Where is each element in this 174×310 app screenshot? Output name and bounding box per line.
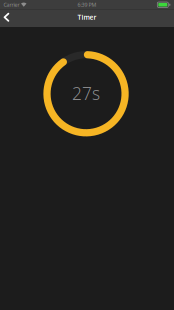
staticText: 6:39 PM xyxy=(77,1,96,8)
staticText: Carrier xyxy=(3,1,19,8)
button[interactable]: Back xyxy=(0,14,16,23)
staticText: Timer xyxy=(77,13,96,22)
staticText: 27s xyxy=(72,82,100,105)
